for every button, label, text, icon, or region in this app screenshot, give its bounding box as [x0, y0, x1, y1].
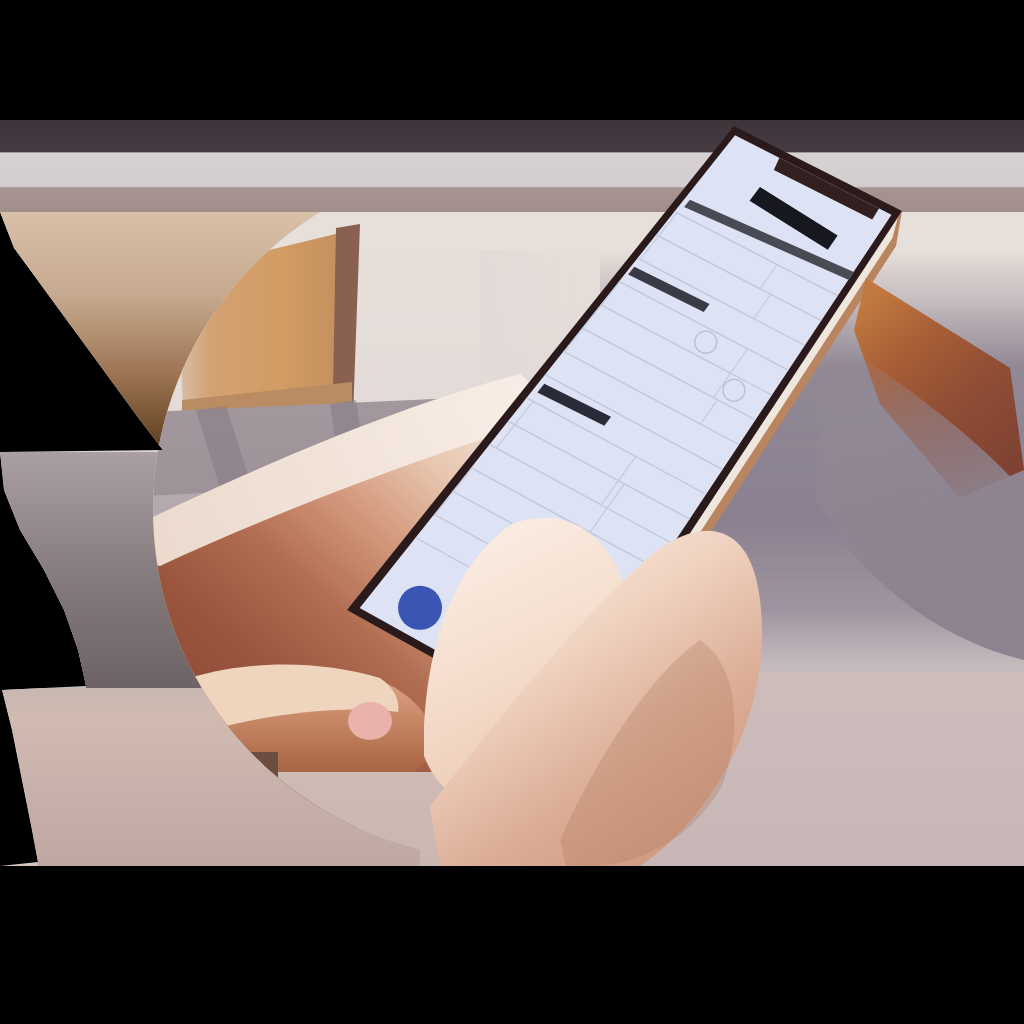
- other: Get A Quote form on a phone held in two …: [0, 0, 1024, 1024]
